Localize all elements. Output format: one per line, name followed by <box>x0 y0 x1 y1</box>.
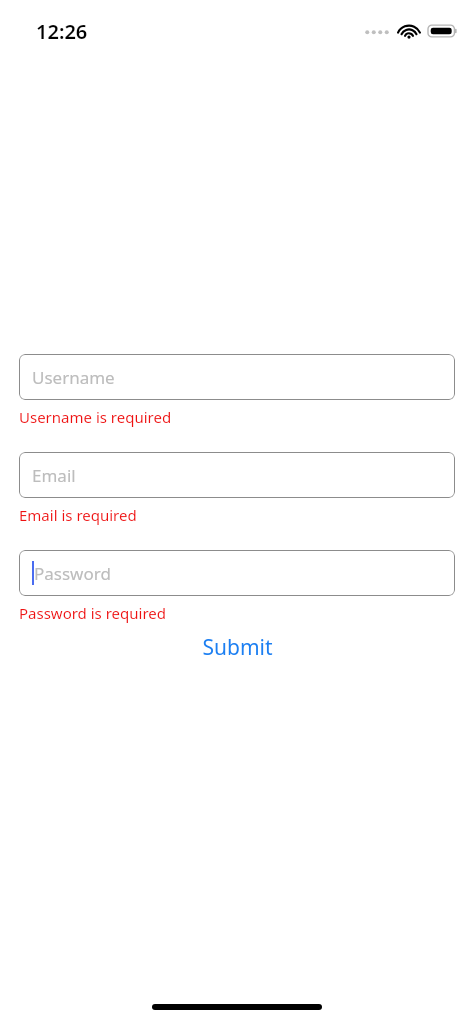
staticText: Email <box>32 464 76 487</box>
staticText: 12:26 <box>36 18 88 45</box>
staticText: Password is required <box>19 603 167 623</box>
button[interactable]: Username <box>19 354 455 400</box>
staticText: Username <box>32 366 115 389</box>
button[interactable]: Password <box>19 550 455 596</box>
staticText: Email is required <box>19 505 137 525</box>
button[interactable]: Submit <box>192 629 283 666</box>
staticText: Username is required <box>19 407 172 427</box>
staticText: Password <box>34 562 111 585</box>
button[interactable]: Email <box>19 452 455 498</box>
staticText: Submit <box>202 633 273 662</box>
